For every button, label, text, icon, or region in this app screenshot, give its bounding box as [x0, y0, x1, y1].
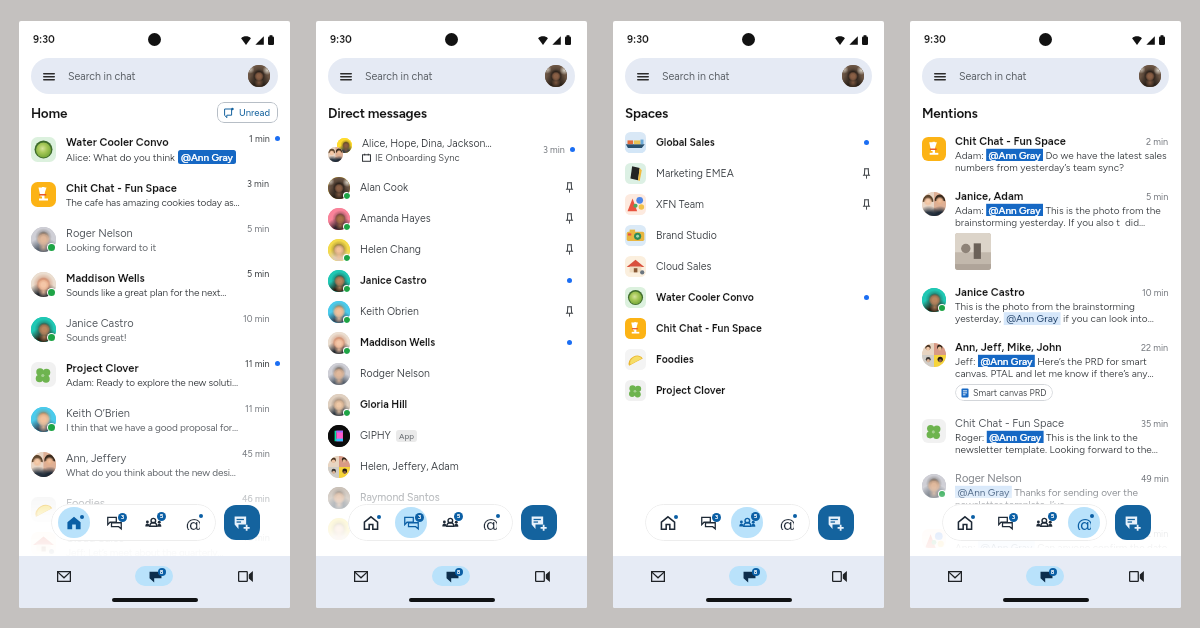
button[interactable]: Chat — [1017, 565, 1073, 587]
button[interactable]: Roger Nelson — [19, 217, 290, 262]
button[interactable]: Mentions — [177, 507, 209, 538]
button[interactable]: Spaces — [731, 507, 763, 538]
button[interactable]: Roger Nelson — [910, 464, 1181, 519]
staticText: Keith Obrien — [360, 305, 419, 318]
button[interactable]: Chat — [126, 565, 182, 587]
staticText: 1 min — [249, 133, 270, 144]
button[interactable]: Mentions — [771, 507, 803, 538]
button[interactable]: Mail — [36, 565, 92, 587]
button[interactable]: Amanda Hayes — [316, 203, 587, 234]
button[interactable]: Janice Castro — [316, 265, 587, 296]
button[interactable]: Brand Studio — [613, 220, 884, 251]
button[interactable]: Direct messages — [692, 507, 724, 538]
button[interactable]: Janice Castro — [910, 278, 1181, 333]
button[interactable]: Spaces — [434, 507, 466, 538]
button[interactable]: New chat — [1115, 505, 1151, 540]
button[interactable]: Spaces — [1028, 507, 1060, 538]
staticText: Foodies — [656, 353, 694, 366]
button[interactable]: Direct messages — [98, 507, 130, 538]
staticText: Mentions — [922, 105, 978, 121]
button[interactable]: Chit Chat - Fun Space — [19, 172, 290, 217]
button[interactable]: Home — [949, 507, 981, 538]
button[interactable]: Ann, Jeffery — [19, 442, 290, 487]
staticText: Sounds great! — [66, 331, 127, 343]
button[interactable]: Open navigation menu — [922, 58, 1169, 94]
button[interactable]: Smart canvas PRD — [955, 384, 1053, 401]
button[interactable]: Maddison Wells — [19, 262, 290, 307]
button[interactable]: Mail — [333, 565, 389, 587]
button[interactable]: Open navigation menu — [328, 58, 575, 94]
staticText: What do you think about the new design… — [66, 466, 236, 478]
button[interactable]: Unread — [217, 102, 278, 123]
staticText: Alice: What do you think — [66, 151, 178, 163]
button[interactable]: Cloud Sales — [613, 251, 884, 282]
button[interactable]: Mail — [927, 565, 983, 587]
staticText: Raymond Santos — [360, 491, 440, 504]
button[interactable]: Ann, Jeff, Mike, John — [910, 333, 1181, 409]
button[interactable]: Chit Chat - Fun Space — [613, 313, 884, 344]
staticText: 9:30 — [33, 33, 55, 46]
staticText: Janice Castro — [66, 317, 134, 330]
button[interactable]: Mail — [630, 565, 686, 587]
staticText: Search in chat — [662, 70, 730, 83]
button[interactable]: Mentions — [1068, 507, 1100, 538]
button[interactable]: Direct messages — [989, 507, 1021, 538]
button[interactable]: Rodger Nelson — [316, 358, 587, 389]
staticText: Search in chat — [365, 70, 433, 83]
button[interactable]: Mentions — [474, 507, 506, 538]
button[interactable]: Meet — [1108, 565, 1164, 587]
button[interactable]: New chat — [224, 505, 260, 540]
staticText: 2 min — [1146, 136, 1169, 147]
button[interactable]: Raymond Santos — [316, 482, 587, 513]
button[interactable]: GIPHY — [316, 420, 587, 451]
button[interactable]: Janice, Adam — [910, 182, 1181, 278]
staticText: 3 — [418, 514, 422, 521]
button[interactable]: XFN Team — [613, 189, 884, 220]
button[interactable]: Alice, Hope, Dina, Jackson… — [316, 127, 587, 172]
button[interactable]: Water Cooler Convo — [613, 282, 884, 313]
button[interactable]: Chat — [423, 565, 479, 587]
button[interactable]: Home — [355, 507, 387, 538]
button[interactable]: Home — [652, 507, 684, 538]
button[interactable]: Gina Ward — [316, 513, 587, 544]
button[interactable]: Foodies — [19, 487, 290, 532]
button[interactable]: Cloud Sales — [19, 532, 290, 556]
button[interactable]: Foodies — [613, 344, 884, 375]
staticText: @ — [780, 515, 794, 530]
button[interactable]: XFN Team — [910, 519, 1181, 556]
button[interactable]: Janice Castro — [19, 307, 290, 352]
button[interactable]: Alan Cook — [316, 172, 587, 203]
button[interactable]: Direct messages — [395, 507, 427, 538]
button[interactable]: Meet — [811, 565, 867, 587]
button[interactable]: Helen Chang — [316, 234, 587, 265]
button[interactable]: Chit Chat - Fun Space — [910, 409, 1181, 464]
staticText: Roger Nelson — [66, 227, 133, 240]
staticText: Ann, Jeff, Mike, John — [955, 341, 1141, 354]
button[interactable]: Keith O’Brien — [19, 397, 290, 442]
button[interactable]: Project Clover — [613, 375, 884, 406]
staticText: 8 — [160, 569, 164, 575]
button[interactable]: Home — [58, 507, 90, 538]
button[interactable]: Maddison Wells — [316, 327, 587, 358]
button[interactable]: Meet — [217, 565, 273, 587]
button[interactable]: Project Clover — [19, 352, 290, 397]
staticText: Chit Chat - Fun Space — [955, 417, 1141, 430]
staticText: Project Clover — [66, 362, 139, 375]
button[interactable]: Gloria Hill — [316, 389, 587, 420]
button[interactable]: Keith Obrien — [316, 296, 587, 327]
button[interactable]: Water Cooler Convo — [19, 127, 290, 172]
button[interactable]: Meet — [514, 565, 570, 587]
button[interactable]: Marketing EMEA — [613, 158, 884, 189]
button[interactable]: Helen, Jeffery, Adam — [316, 451, 587, 482]
button[interactable]: Open navigation menu — [31, 58, 278, 94]
staticText: Keith O’Brien — [66, 407, 130, 420]
button[interactable]: New chat — [521, 505, 557, 540]
staticText: Chit Chat - Fun Space — [66, 182, 177, 195]
button[interactable]: Spaces — [137, 507, 169, 538]
button[interactable]: New chat — [818, 505, 854, 540]
button[interactable]: Open navigation menu — [625, 58, 872, 94]
button[interactable]: Chat — [720, 565, 776, 587]
staticText: 22 min — [1141, 342, 1169, 353]
button[interactable]: Chit Chat - Fun Space — [910, 127, 1181, 182]
button[interactable]: Global Sales — [613, 127, 884, 158]
